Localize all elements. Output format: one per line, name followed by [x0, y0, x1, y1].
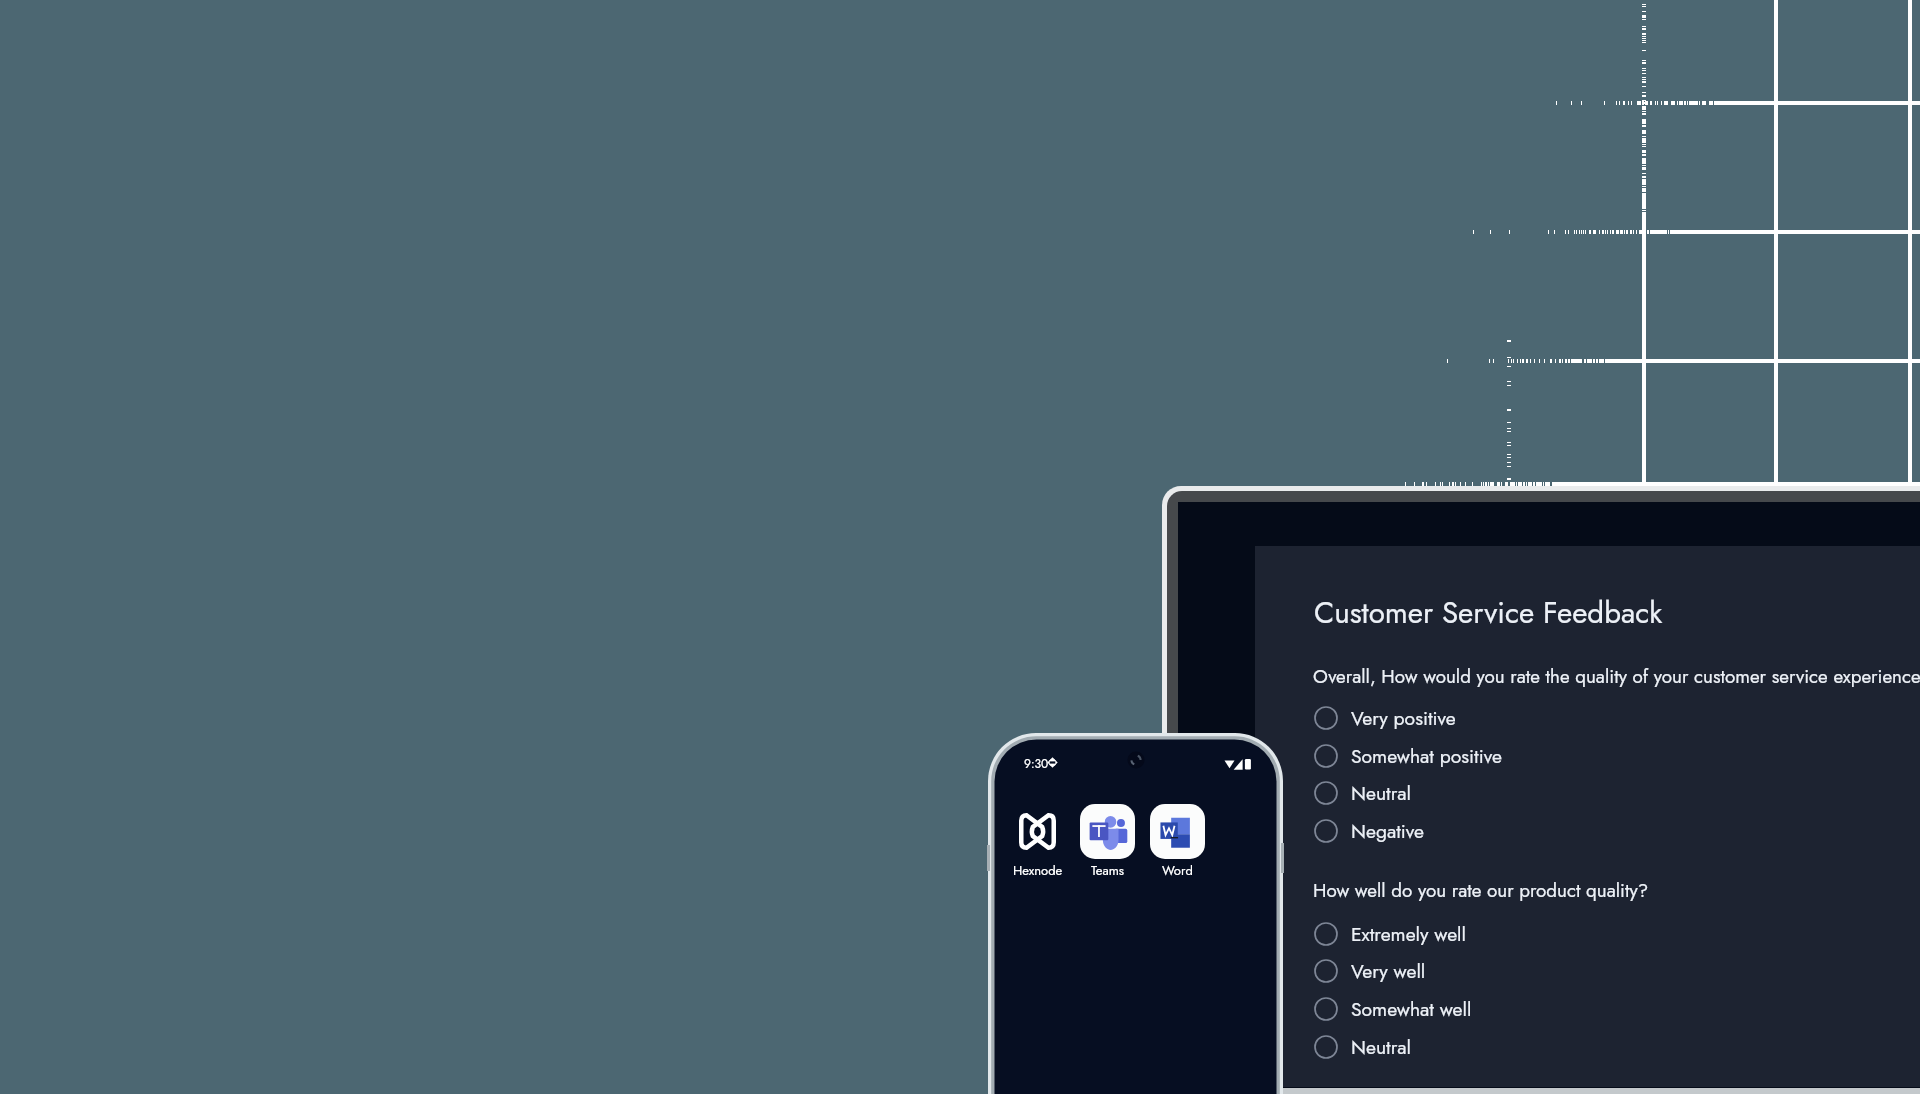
- button[interactable]: Extremely well: [1313, 920, 1643, 948]
- staticText: Neutral: [1351, 1033, 1411, 1061]
- staticText: Teams: [1091, 861, 1125, 880]
- staticText: Hexnode: [1013, 861, 1063, 880]
- staticText: Somewhat well: [1351, 995, 1472, 1023]
- button[interactable]: Somewhat positive: [1313, 742, 1643, 770]
- staticText: Word: [1162, 861, 1193, 880]
- button[interactable]: Negative: [1313, 817, 1643, 845]
- staticText: Extremely well: [1351, 920, 1466, 948]
- button[interactable]: Very well: [1313, 957, 1643, 985]
- button[interactable]: Teams: [1070, 804, 1145, 880]
- button[interactable]: Word: [1140, 804, 1215, 880]
- button[interactable]: Neutral: [1313, 779, 1643, 807]
- button[interactable]: Very positive: [1313, 704, 1643, 732]
- staticText: How well do you rate our product quality…: [1313, 877, 1649, 904]
- staticText: Negative: [1351, 817, 1424, 845]
- staticText: Neutral: [1351, 779, 1411, 807]
- staticText: Customer Service Feedback: [1314, 591, 1663, 634]
- staticText: Very positive: [1351, 704, 1456, 732]
- other: Notification: [1046, 756, 1059, 769]
- staticText: Somewhat positive: [1351, 742, 1502, 770]
- button[interactable]: Somewhat well: [1313, 995, 1643, 1023]
- button[interactable]: Hexnode: [1000, 804, 1075, 880]
- staticText: Overall, How would you rate the quality …: [1313, 663, 1920, 690]
- staticText: 9:30: [1024, 755, 1049, 772]
- button[interactable]: Neutral: [1313, 1033, 1643, 1061]
- staticText: Very well: [1351, 957, 1426, 985]
